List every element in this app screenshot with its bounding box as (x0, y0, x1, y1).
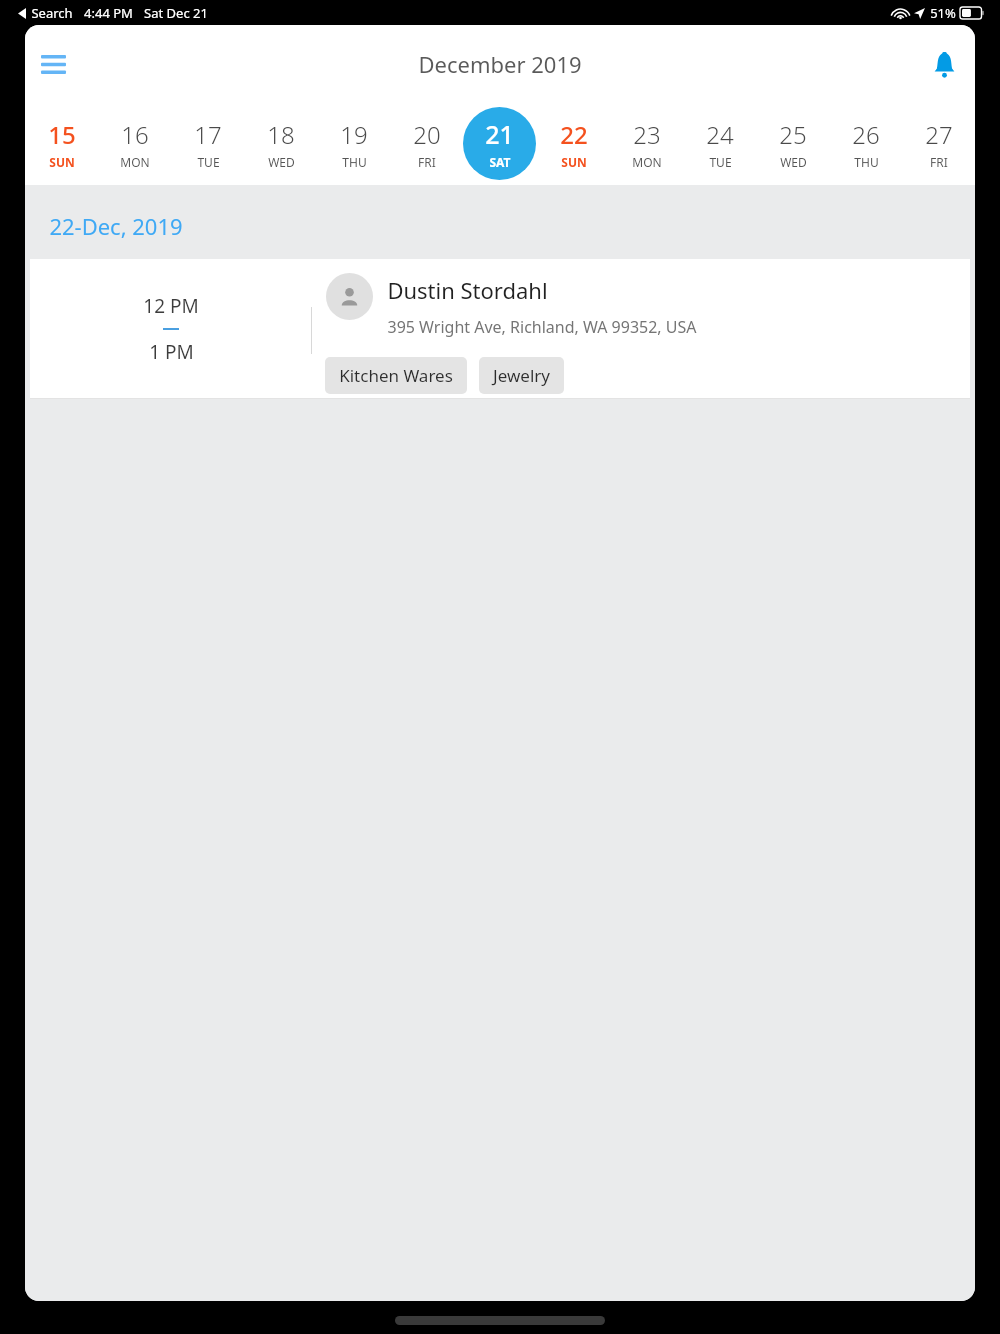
staticText: 16 (121, 118, 149, 151)
staticText: 25 (779, 118, 807, 151)
button[interactable]: Kitchen Wares (325, 357, 467, 394)
button[interactable]: 21 (463, 107, 536, 180)
staticText: Search (31, 4, 73, 22)
button[interactable]: 12 PM (30, 259, 970, 398)
button[interactable]: 26 (829, 107, 902, 180)
staticText: 395 Wright Ave, Richland, WA 99352, USA (387, 316, 697, 338)
staticText: SUN (561, 154, 587, 170)
staticText: Dustin Stordahl (387, 275, 548, 305)
staticText: WED (268, 154, 295, 170)
button[interactable]: 17 (171, 107, 244, 180)
button[interactable]: 15 (25, 107, 98, 180)
staticText: SAT (489, 154, 511, 170)
staticText: FRI (418, 154, 436, 170)
staticText: 17 (194, 118, 222, 151)
button[interactable]: Jewelry (479, 357, 564, 394)
staticText: 18 (267, 118, 295, 151)
staticText: FRI (930, 154, 948, 170)
button[interactable]: 25 (756, 107, 829, 180)
staticText: 12 PM (143, 293, 199, 319)
button[interactable]: 24 (683, 107, 756, 180)
staticText: 21 (485, 117, 514, 151)
staticText: MON (632, 154, 662, 170)
staticText: 27 (925, 118, 953, 151)
button[interactable]: 18 (244, 107, 317, 180)
staticText: TUE (197, 154, 220, 170)
staticText: December 2019 (418, 49, 582, 79)
staticText: Kitchen Wares (339, 364, 453, 387)
staticText: 4:44 PM (84, 4, 133, 22)
staticText: 22 (560, 118, 588, 151)
staticText: 26 (852, 118, 880, 151)
staticText: WED (780, 154, 807, 170)
button[interactable]: 16 (98, 107, 171, 180)
staticText: 22-Dec, 2019 (49, 211, 183, 241)
button[interactable]: 20 (390, 107, 463, 180)
staticText: 1 PM (149, 339, 194, 365)
staticText: 19 (340, 118, 368, 151)
staticText: Jewelry (493, 364, 550, 387)
staticText: 51% (930, 4, 956, 22)
button[interactable]: Notifications (921, 41, 967, 87)
staticText: THU (342, 154, 367, 170)
staticText: 23 (633, 118, 661, 151)
staticText: 20 (413, 118, 441, 151)
button[interactable]: 23 (610, 107, 683, 180)
staticText: THU (854, 154, 879, 170)
button[interactable]: Menu (31, 42, 75, 86)
staticText: MON (120, 154, 150, 170)
staticText: SUN (49, 154, 75, 170)
staticText: 24 (706, 118, 734, 151)
staticText: 15 (48, 118, 76, 151)
button[interactable]: 22 (537, 107, 610, 180)
staticText: Sat Dec 21 (144, 4, 208, 22)
staticText: TUE (709, 154, 732, 170)
button[interactable]: 19 (317, 107, 390, 180)
button[interactable]: 27 (902, 107, 975, 180)
